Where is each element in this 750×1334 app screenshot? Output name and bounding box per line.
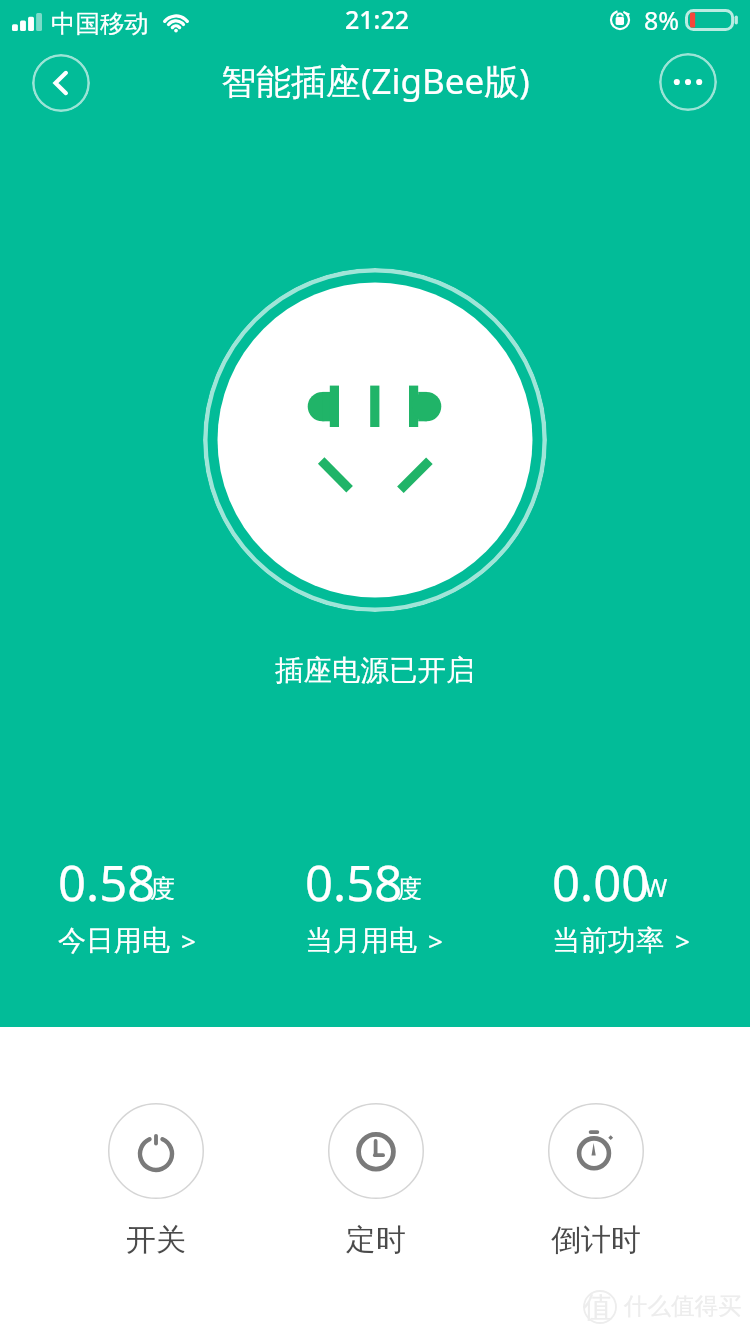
- staticText: 度: [150, 873, 175, 904]
- staticText: >: [181, 923, 196, 958]
- staticText: 今日用电: [58, 923, 170, 958]
- button[interactable]: More options: [659, 53, 717, 111]
- staticText: 插座电源已开启: [275, 653, 475, 689]
- staticText: W: [644, 870, 668, 904]
- button[interactable]: 0.58: [58, 849, 258, 958]
- staticText: 8%: [644, 3, 680, 37]
- staticText: 0.58: [58, 849, 156, 916]
- staticText: 0.00: [552, 849, 650, 916]
- button[interactable]: Schedule timer: [298, 1103, 454, 1259]
- staticText: 什么值得买: [624, 1291, 742, 1321]
- button[interactable]: Power switch: [78, 1103, 234, 1259]
- staticText: 值: [583, 1289, 612, 1323]
- staticText: 0.58: [305, 849, 403, 916]
- staticText: 当月用电: [305, 923, 417, 958]
- button[interactable]: Countdown: [518, 1103, 674, 1259]
- staticText: 中国移动: [51, 8, 149, 39]
- button[interactable]: Toggle plug power: [203, 268, 547, 612]
- button[interactable]: Back: [32, 54, 90, 112]
- staticText: 21:22: [345, 2, 410, 36]
- staticText: 倒计时: [551, 1221, 641, 1259]
- staticText: >: [675, 923, 690, 958]
- staticText: 当前功率: [552, 923, 664, 958]
- staticText: >: [428, 923, 443, 958]
- staticText: 智能插座(ZigBee版): [221, 57, 530, 105]
- button[interactable]: 0.58: [305, 849, 505, 958]
- button[interactable]: 0.00: [552, 849, 750, 958]
- staticText: 度: [397, 873, 422, 904]
- staticText: 开关: [126, 1221, 186, 1259]
- staticText: 定时: [346, 1221, 406, 1259]
